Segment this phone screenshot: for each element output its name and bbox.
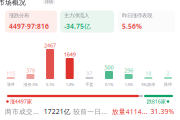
staticText: 较前一日回略 — [73, 107, 109, 116]
staticText: 378 — [26, 67, 35, 74]
button[interactable]: 昨日涨停表现 — [118, 10, 175, 32]
button[interactable]: 涨跌分布 — [5, 10, 57, 32]
staticText: 详情 — [45, 0, 53, 4]
staticText: 31.39% — [150, 107, 174, 116]
staticText: 昨日涨停表现 — [122, 12, 152, 19]
staticText: 放量4114亿 — [112, 107, 148, 116]
staticText: 4497·97:816 — [9, 22, 49, 31]
staticText: 1-5% — [125, 82, 133, 87]
staticText: 2467 — [44, 42, 56, 49]
staticText: 0-1% — [105, 82, 113, 87]
staticText: 主力净流入 — [64, 12, 89, 19]
staticText: 2 — [166, 70, 169, 77]
button[interactable]: 详情 — [43, 0, 55, 4]
staticText: 500 — [104, 64, 113, 71]
staticText: 涨停 — [7, 82, 15, 87]
staticText: 296 — [124, 67, 133, 74]
staticText: 5-1% — [46, 82, 54, 87]
staticText: 涨停-5% — [23, 82, 37, 87]
staticText: 17221亿 — [44, 107, 71, 116]
staticText: 两市成交总额 — [5, 107, 41, 116]
staticText: 18 — [145, 70, 151, 77]
staticText: 跌816家 — [147, 98, 166, 105]
staticText: 涨跌分布 — [9, 12, 29, 19]
staticText: 97 — [86, 70, 92, 77]
staticText: 市场概况 — [0, 0, 26, 7]
staticText: 1-0% — [66, 82, 74, 87]
staticText: 跌停 — [164, 82, 172, 87]
staticText: 5.56% — [122, 22, 142, 31]
staticText: 平盘 — [85, 82, 93, 87]
staticText: 1649 — [64, 51, 76, 58]
button[interactable]: 主力净流入 — [60, 10, 114, 32]
staticText: 5%-跌停 — [141, 82, 155, 87]
staticText: -34.75亿 — [64, 22, 91, 31]
staticText: 涨4497家 — [10, 98, 32, 105]
staticText: 115 — [6, 70, 15, 77]
